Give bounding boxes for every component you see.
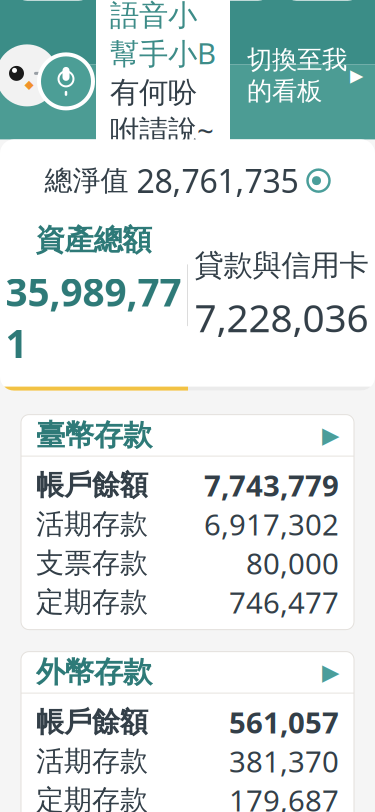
staticText: ▶ [322, 659, 339, 685]
staticText: 有何吩咐請說~ [110, 74, 214, 149]
staticText: 7,743,779 [204, 466, 339, 505]
staticText: 35,989,771 [5, 266, 181, 369]
staticText: ▶ [350, 66, 363, 85]
button[interactable]: 語音小幫手 [37, 52, 95, 110]
staticText: 7,228,036 [194, 292, 368, 343]
staticText: ◆ [24, 78, 33, 91]
staticText: 561,057 [229, 703, 339, 742]
staticText: 80,000 [246, 544, 339, 583]
button[interactable]: 總淨值 [0, 139, 375, 212]
staticText: 總淨值 [44, 163, 128, 198]
staticText: 帳戶餘額 [36, 468, 148, 502]
staticText: 381,370 [229, 742, 339, 781]
staticText: 外幣存款 [36, 654, 152, 690]
staticText: 746,477 [229, 583, 339, 622]
staticText: 帳戶餘額 [36, 705, 148, 739]
staticText: 切換至我的看板 [247, 44, 347, 106]
staticText: 臺幣存款 [36, 417, 152, 453]
staticText: ▶ [322, 422, 339, 448]
staticText: 定期存款 [36, 783, 148, 812]
staticText: 6,917,302 [204, 505, 339, 544]
button[interactable]: 臺幣存款 [21, 415, 354, 456]
staticText: 179,687 [229, 781, 339, 812]
staticText: 28,761,735 [136, 159, 298, 202]
button[interactable]: 切換至我的看板 [247, 44, 363, 106]
staticText: 活期存款 [36, 507, 148, 541]
staticText: 語音小幫手小B [110, 0, 216, 72]
button[interactable]: 資產總額 [0, 212, 187, 379]
staticText: 貸款與信用卡 [194, 248, 368, 284]
button[interactable]: 外幣存款 [21, 652, 354, 693]
button[interactable]: 貸款與信用卡 [188, 238, 375, 353]
staticText: 定期存款 [36, 585, 148, 619]
staticText: 活期存款 [36, 744, 148, 778]
staticText: 資產總額 [35, 222, 151, 258]
staticText: 支票存款 [36, 546, 148, 580]
